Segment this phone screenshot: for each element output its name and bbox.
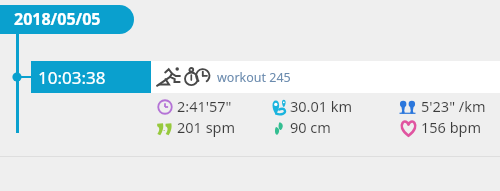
staticText: 156 bpm: [421, 117, 482, 137]
button[interactable]: 2018/05/05: [0, 5, 134, 34]
staticText: 5'23" /km: [421, 96, 486, 116]
staticText: 10:03:38: [38, 66, 106, 89]
button[interactable]: 10:03:38: [31, 61, 151, 93]
staticText: 90 cm: [290, 117, 331, 137]
staticText: 201 spm: [177, 117, 236, 137]
staticText: 2018/05/05: [14, 8, 101, 30]
staticText: workout 245: [217, 69, 291, 86]
staticText: 2:41'57": [177, 96, 232, 116]
staticText: 30.01 km: [290, 96, 353, 116]
